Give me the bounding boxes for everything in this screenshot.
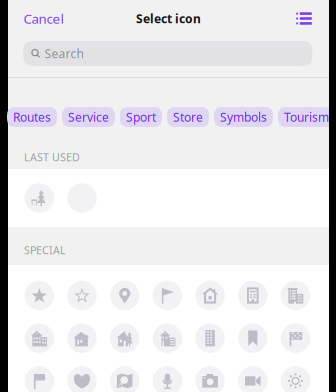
button[interactable]: Flag [25, 366, 54, 392]
button[interactable]: Brightness [281, 366, 310, 392]
staticText: Symbols [220, 109, 267, 125]
staticText: Cancel [23, 10, 63, 27]
button[interactable]: City [281, 281, 310, 310]
staticText: Select icon [136, 10, 201, 26]
button[interactable]: Store [167, 107, 209, 127]
staticText: SPECIAL [24, 243, 66, 257]
staticText: Sport [126, 109, 156, 125]
button[interactable]: Office [238, 281, 268, 310]
button[interactable]: Video [238, 366, 268, 392]
button[interactable]: Bookmark [238, 323, 268, 353]
button[interactable]: Favourite [25, 281, 54, 310]
button[interactable]: Routes [7, 107, 57, 127]
button[interactable]: Pennant [153, 281, 182, 310]
button[interactable]: Cottage [110, 323, 139, 353]
button[interactable]: Cancel [8, 3, 79, 34]
button[interactable]: School [25, 323, 54, 353]
button[interactable]: Place [110, 281, 139, 310]
staticText: Service [68, 109, 109, 125]
button[interactable]: Favourite [67, 366, 97, 392]
staticText: Routes [13, 109, 51, 125]
button[interactable]: Tourism [278, 107, 335, 127]
button[interactable]: Finish [281, 323, 310, 353]
staticText: Store [173, 109, 203, 125]
button[interactable]: Home [195, 281, 225, 310]
button[interactable]: Star [67, 281, 97, 310]
button[interactable]: List options [283, 3, 325, 34]
button[interactable]: Symbols [214, 107, 273, 127]
button[interactable]: Service [62, 107, 115, 127]
button[interactable]: Sport [120, 107, 162, 127]
button[interactable]: Villa [153, 323, 182, 353]
button[interactable]: Microphone [153, 366, 182, 392]
button[interactable]: Explore [110, 366, 139, 392]
button[interactable]: Park [25, 183, 54, 213]
button[interactable]: Camera [195, 366, 225, 392]
button[interactable]: House [67, 323, 97, 353]
staticText: Search [44, 45, 83, 61]
staticText: Tourism [284, 109, 329, 125]
button[interactable]: Apartment [195, 323, 225, 353]
staticText: LAST USED [24, 150, 80, 164]
